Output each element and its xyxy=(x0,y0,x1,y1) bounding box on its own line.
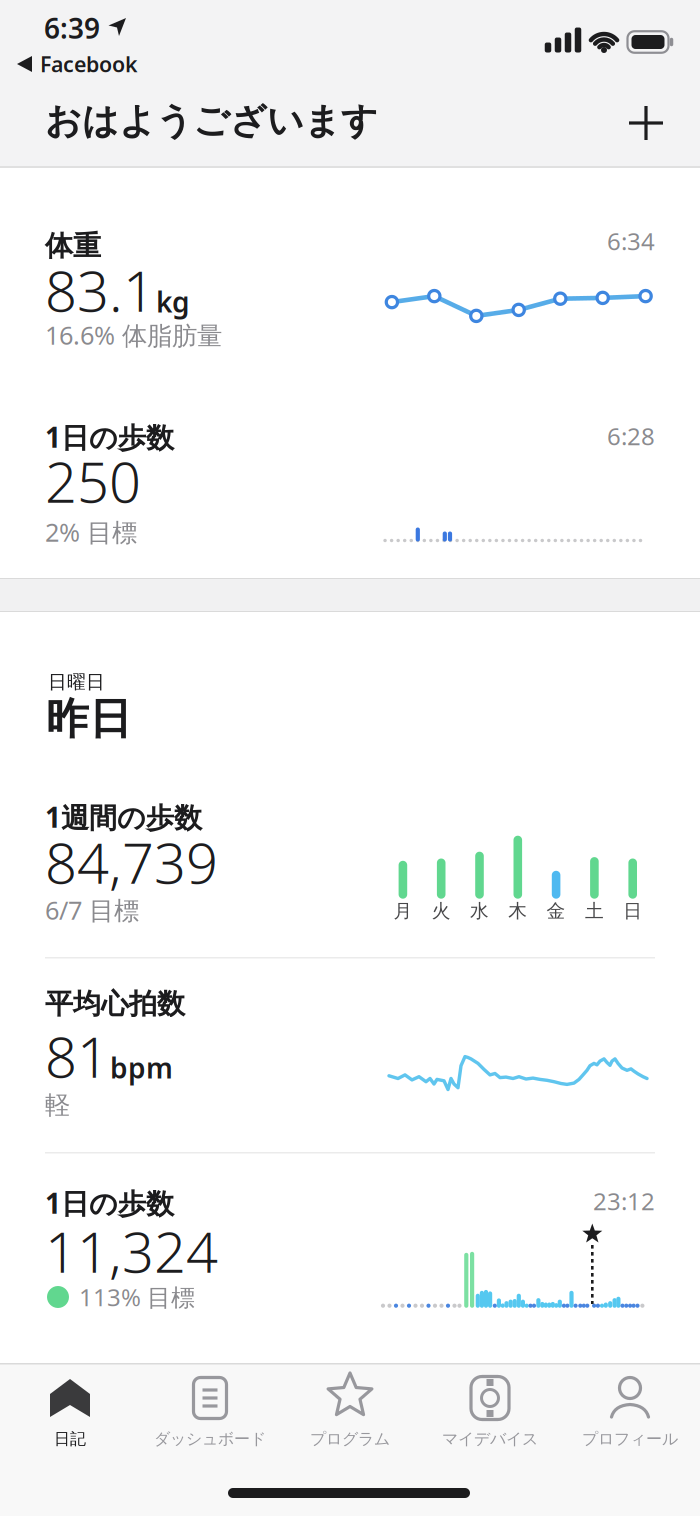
staticText: 2% 目標 xyxy=(45,515,137,549)
staticText: ダッシュボード xyxy=(154,1429,266,1449)
staticText: 日記 xyxy=(54,1429,86,1449)
staticText: 250 xyxy=(45,444,141,518)
staticText: 日 xyxy=(623,899,642,922)
staticText: 23:12 xyxy=(593,1185,655,1217)
staticText: 6:28 xyxy=(607,420,655,452)
staticText: 16.6% 体脂肪量 xyxy=(45,318,222,352)
staticText: 1日の歩数 xyxy=(45,418,174,456)
button[interactable]: 平均心拍数 xyxy=(0,957,700,1152)
staticText: プログラム xyxy=(310,1429,390,1449)
button[interactable]: 1日の歩数 xyxy=(0,395,700,578)
staticText: 84,739 xyxy=(45,825,218,899)
button[interactable]: プロフィール xyxy=(560,1363,700,1473)
button[interactable]: 日記 xyxy=(0,1363,140,1473)
staticText: 11,324 xyxy=(45,1214,218,1288)
staticText: kg xyxy=(156,283,190,320)
staticText: 6/7 目標 xyxy=(45,893,139,927)
staticText: 日曜日 xyxy=(48,670,105,693)
staticText: 81 xyxy=(45,1019,109,1093)
staticText: 水 xyxy=(470,899,489,922)
button[interactable]: プログラム xyxy=(280,1363,420,1473)
staticText: マイデバイス xyxy=(442,1429,538,1449)
staticText: 体重 xyxy=(45,229,101,263)
staticText: 1日の歩数 xyxy=(45,1184,174,1222)
staticText: おはようございます xyxy=(45,99,378,143)
staticText: 平均心拍数 xyxy=(45,987,185,1021)
staticText: 金 xyxy=(547,899,566,922)
button[interactable]: 追加 xyxy=(623,100,669,146)
button[interactable]: 体重 xyxy=(0,168,700,395)
button[interactable]: ダッシュボード xyxy=(140,1363,280,1473)
staticText: bpm xyxy=(110,1049,173,1086)
staticText: 土 xyxy=(585,899,604,922)
button[interactable]: マイデバイス xyxy=(420,1363,560,1473)
staticText: 113% 目標 xyxy=(79,1281,195,1313)
staticText: 6:39 xyxy=(44,9,100,47)
staticText: 月 xyxy=(393,899,412,922)
staticText: 木 xyxy=(508,899,527,922)
button[interactable]: 1日の歩数 xyxy=(0,1152,700,1363)
button[interactable]: 1週間の歩数 xyxy=(0,760,700,957)
staticText: 軽 xyxy=(45,1089,70,1120)
staticText: 1週間の歩数 xyxy=(45,798,202,836)
staticText: 6:34 xyxy=(607,225,655,257)
staticText: 83.1 xyxy=(45,253,155,327)
staticText: 火 xyxy=(432,899,451,922)
staticText: プロフィール xyxy=(582,1429,678,1449)
staticText: Facebook xyxy=(40,50,138,78)
staticText: 昨日 xyxy=(46,693,132,745)
